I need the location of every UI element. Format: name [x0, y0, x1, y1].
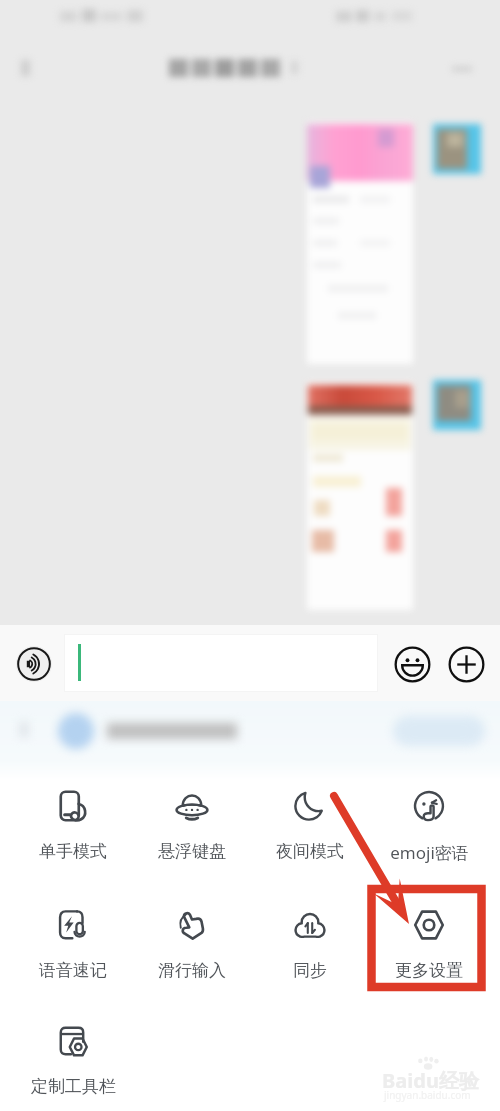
staticText: 滑行输入: [158, 960, 226, 981]
button[interactable]: Voice input: [16, 646, 52, 682]
button[interactable]: 更多设置: [370, 898, 488, 988]
staticText: emoji密语: [390, 841, 469, 864]
button[interactable]: More functions: [447, 645, 485, 683]
staticText: 更多设置: [395, 960, 463, 981]
staticText: 夜间模式: [276, 841, 344, 862]
button[interactable]: 滑行输入: [133, 898, 251, 988]
button[interactable]: [65, 635, 377, 691]
staticText: Baidu经验: [382, 1067, 479, 1094]
button[interactable]: emoji密语: [370, 779, 488, 869]
button[interactable]: 单手模式: [14, 779, 132, 869]
button[interactable]: 语音速记: [14, 898, 132, 988]
staticText: 同步: [293, 960, 327, 981]
button[interactable]: 悬浮键盘: [133, 779, 251, 869]
button[interactable]: [0, 701, 500, 760]
staticText: 单手模式: [39, 841, 107, 862]
button[interactable]: Switch keyboard: [393, 716, 485, 746]
staticText: 语音速记: [39, 960, 107, 981]
staticText: 悬浮键盘: [158, 841, 226, 862]
button[interactable]: 定制工具栏: [14, 1014, 132, 1104]
staticText: 定制工具栏: [31, 1076, 116, 1097]
button[interactable]: 同步: [251, 898, 369, 988]
button[interactable]: 夜间模式: [251, 779, 369, 869]
button[interactable]: Emoji: [393, 645, 431, 683]
staticText: jingyan.baidu.com: [384, 1088, 471, 1102]
